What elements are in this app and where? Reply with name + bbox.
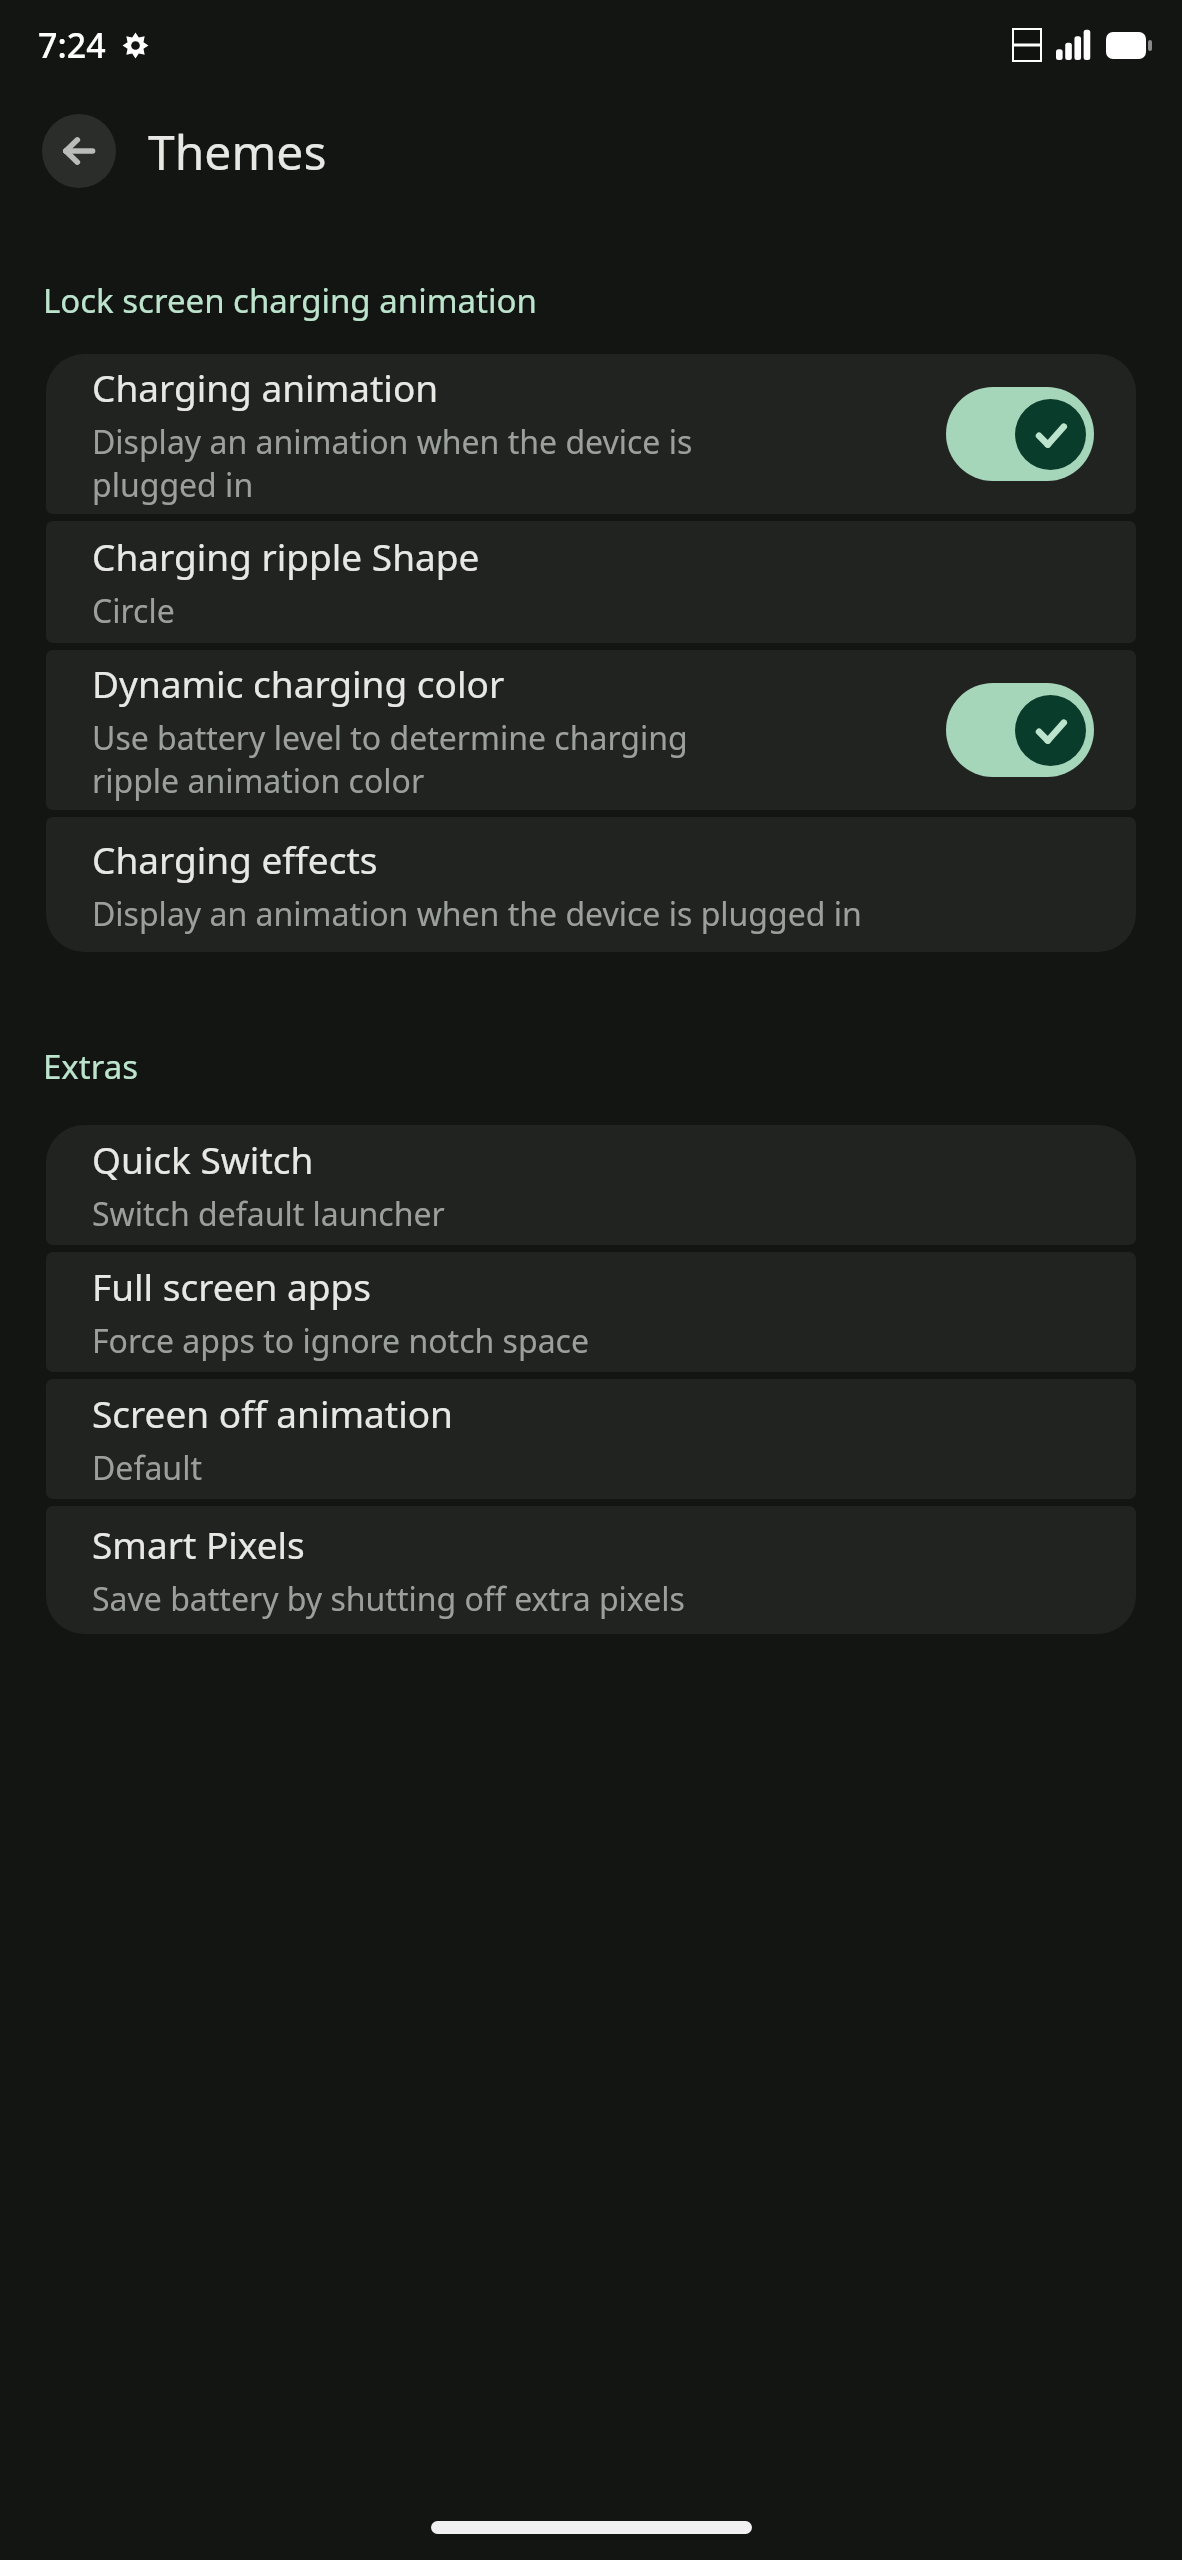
staticText: Force apps to ignore notch space	[92, 1319, 589, 1363]
staticText: Screen off animation	[92, 1388, 453, 1438]
staticText: Full screen apps	[92, 1261, 372, 1311]
button[interactable]: Smart Pixels	[46, 1506, 1136, 1634]
button[interactable]: Toggle on	[946, 683, 1094, 777]
staticText: Smart Pixels	[92, 1519, 305, 1569]
button[interactable]: Toggle on	[946, 387, 1094, 481]
staticText: Save battery by shutting off extra pixel…	[92, 1577, 685, 1621]
staticText: Default	[92, 1446, 202, 1490]
staticText: Display an animation when the device is …	[92, 892, 862, 936]
button[interactable]: Dynamic charging color	[46, 650, 1136, 810]
staticText: Lock screen charging animation	[43, 278, 537, 323]
button[interactable]: Screen off animation	[46, 1379, 1136, 1499]
button[interactable]: Charging ripple Shape	[46, 521, 1136, 643]
staticText: Themes	[148, 119, 327, 184]
staticText: 7:24	[38, 22, 106, 68]
staticText: Display an animation when the device is …	[92, 420, 693, 506]
staticText: Charging effects	[92, 834, 378, 884]
staticText: Extras	[43, 1044, 139, 1089]
staticText: Quick Switch	[92, 1134, 314, 1184]
staticText: Switch default launcher	[92, 1192, 445, 1236]
button[interactable]: Charging animation	[46, 354, 1136, 514]
staticText: Dynamic charging color	[92, 658, 505, 708]
button[interactable]: Quick Switch	[46, 1125, 1136, 1245]
staticText: Circle	[92, 589, 175, 633]
staticText: Charging animation	[92, 362, 439, 412]
staticText: Use battery level to determine charging …	[92, 716, 688, 802]
button[interactable]: Back	[42, 114, 116, 188]
button[interactable]: Charging effects	[46, 817, 1136, 952]
staticText: Charging ripple Shape	[92, 531, 480, 581]
button[interactable]: Full screen apps	[46, 1252, 1136, 1372]
